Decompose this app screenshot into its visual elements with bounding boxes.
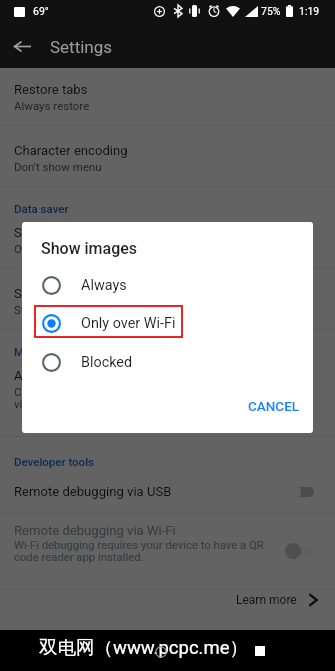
staticText: Only over Wi-Fi — [14, 242, 90, 255]
staticText: Remote debugging via USB — [14, 484, 172, 499]
staticText: Only over Wi-Fi — [81, 315, 176, 332]
staticText: 75% — [261, 5, 281, 17]
staticText: Settings — [50, 37, 113, 57]
staticText: Learn more — [236, 593, 297, 607]
button[interactable]: Always — [22, 266, 313, 304]
staticText: Restore tabs — [14, 82, 88, 97]
button[interactable]: Learn more — [0, 589, 335, 611]
staticText: Blocked — [81, 354, 133, 371]
staticText: Show images — [14, 225, 93, 240]
staticText: Safety check — [14, 286, 89, 301]
staticText: Character encoding — [14, 143, 128, 158]
staticText: CANCEL — [248, 398, 300, 414]
button[interactable]: Blocked — [22, 343, 313, 381]
button[interactable]: Only over Wi-Fi — [22, 304, 313, 342]
staticText: Stay safe online — [14, 303, 96, 316]
button[interactable]: CANCEL — [245, 392, 303, 419]
staticText: Developer tools — [14, 455, 94, 468]
staticText: Remote debugging via Wi-Fi — [14, 523, 176, 538]
button[interactable]: Back — [6, 30, 38, 62]
staticText: Always — [81, 277, 127, 294]
staticText: Always restore — [14, 99, 90, 112]
staticText: Wi-Fi debugging requires your device to … — [14, 539, 264, 552]
staticText: Data saver — [14, 202, 69, 215]
staticText: Control which sites can autoplay — [14, 385, 180, 398]
staticText: 69° — [33, 5, 49, 17]
staticText: Show images — [41, 239, 138, 258]
staticText: Don't show menu — [14, 160, 102, 173]
staticText: video and audio — [14, 397, 95, 410]
staticText: 1:19 — [299, 5, 320, 17]
button[interactable] — [285, 543, 314, 559]
staticText: 双电网（www.pcpc.me） — [39, 636, 249, 659]
button[interactable] — [285, 484, 314, 500]
staticText: code reader app installed. — [14, 551, 144, 564]
staticText: Media — [14, 345, 46, 358]
staticText: Autoplay — [14, 368, 66, 383]
